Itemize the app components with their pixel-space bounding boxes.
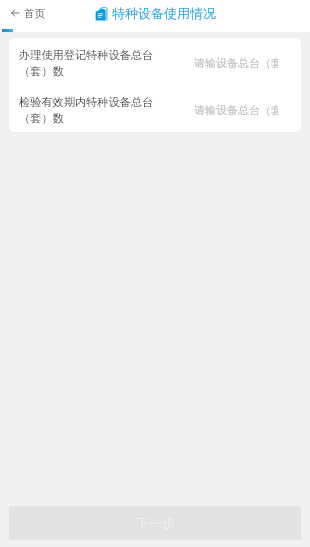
staticText: 首页 bbox=[24, 7, 45, 20]
staticText: 请输设备总台（套）数 bbox=[194, 56, 278, 70]
button[interactable]: Back bbox=[11, 0, 45, 26]
staticText: 特种设备使用情况 bbox=[112, 5, 216, 21]
staticText: 办理使用登记特种设备总台（套）数 bbox=[19, 48, 163, 78]
button[interactable]: 办理使用登记特种设备总台（套）数 bbox=[9, 38, 301, 85]
staticText: 请输设备总台（套）数 bbox=[194, 103, 278, 117]
staticText: 检验有效期内特种设备总台（套）数 bbox=[19, 95, 163, 125]
staticText: 下一步 bbox=[136, 515, 175, 531]
button[interactable]: 检验有效期内特种设备总台（套）数 bbox=[9, 85, 301, 132]
other: Back bbox=[11, 9, 19, 17]
